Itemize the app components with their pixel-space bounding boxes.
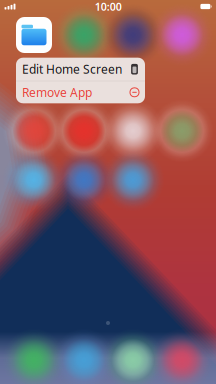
staticText: Remove App (22, 84, 92, 100)
staticText: Edit Home Screen (22, 61, 122, 77)
button[interactable]: Edit Home Screen (16, 58, 145, 81)
button[interactable]: Remove App (16, 81, 145, 103)
staticText: 10:00 (95, 0, 122, 14)
